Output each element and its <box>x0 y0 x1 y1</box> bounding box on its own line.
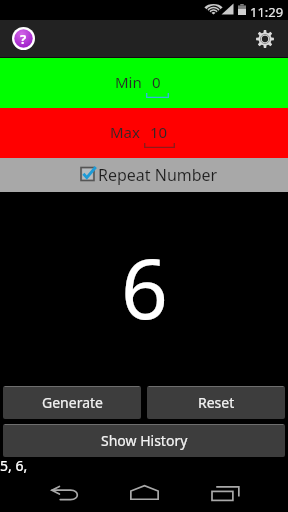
staticText: 6 <box>121 231 168 343</box>
staticText: 10 <box>150 122 168 142</box>
staticText: Generate <box>42 393 103 412</box>
button[interactable]: Repeat Number <box>0 158 288 192</box>
staticText: Min <box>115 72 142 92</box>
button[interactable]: Max <box>0 108 288 158</box>
staticText: 11:29 <box>250 3 284 21</box>
staticText: Repeat Number <box>98 164 218 186</box>
staticText: 0 <box>152 72 161 92</box>
button[interactable]: Reset <box>147 386 285 419</box>
staticText: Max <box>110 122 140 142</box>
staticText: Reset <box>198 393 235 412</box>
button[interactable]: Help <box>12 27 35 50</box>
button[interactable]: Home <box>129 485 160 500</box>
button[interactable]: Generate <box>3 386 141 419</box>
staticText: 5, 6, <box>0 456 28 475</box>
button[interactable]: Show History <box>3 424 285 457</box>
button[interactable]: Settings <box>256 30 274 48</box>
staticText: Show History <box>101 431 188 450</box>
staticText: ? <box>20 30 27 48</box>
button[interactable]: Back <box>51 486 79 500</box>
button[interactable]: Min <box>0 58 288 108</box>
button[interactable]: Recents <box>211 486 240 501</box>
